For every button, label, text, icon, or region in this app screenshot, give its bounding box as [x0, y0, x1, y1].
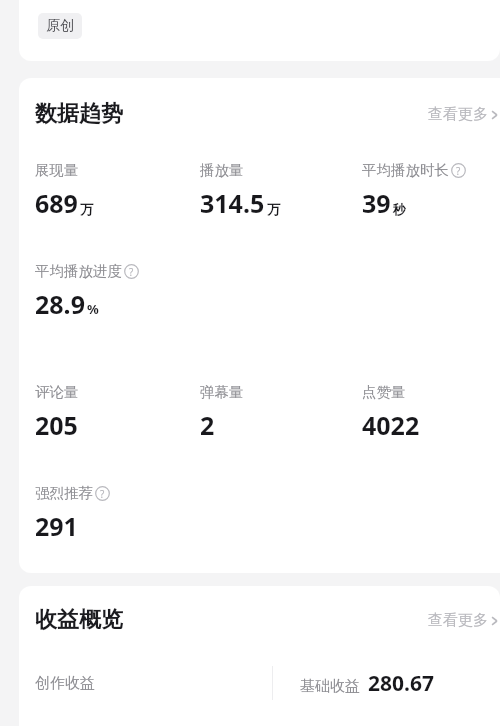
- staticText: 弹幕量: [200, 383, 244, 401]
- staticText: 39: [362, 186, 391, 220]
- staticText: 评论量: [35, 383, 79, 401]
- staticText: 28.9: [35, 287, 85, 321]
- staticText: 基础收益: [300, 677, 360, 696]
- staticText: 点赞量: [362, 383, 406, 401]
- staticText: 万: [80, 201, 93, 217]
- staticText: ?: [129, 265, 134, 279]
- staticText: 291: [35, 509, 78, 543]
- button[interactable]: 查看更多: [426, 101, 500, 128]
- staticText: 314.5: [200, 186, 265, 220]
- button[interactable]: 查看更多: [426, 607, 500, 634]
- staticText: ?: [100, 487, 105, 501]
- staticText: 播放量: [200, 161, 244, 179]
- button[interactable]: 原创: [19, 0, 500, 61]
- staticText: 205: [35, 408, 78, 442]
- staticText: 收益概览: [35, 606, 123, 634]
- staticText: ?: [456, 164, 461, 178]
- staticText: %: [87, 300, 99, 318]
- staticText: 平均播放进度: [35, 262, 122, 280]
- staticText: 查看更多: [428, 611, 488, 630]
- staticText: 2: [200, 408, 215, 442]
- staticText: 创作收益: [35, 674, 95, 693]
- staticText: 强烈推荐: [35, 484, 93, 502]
- staticText: 万: [267, 201, 280, 217]
- staticText: 4022: [362, 408, 420, 442]
- staticText: 280.67: [368, 669, 434, 698]
- staticText: 数据趋势: [35, 100, 123, 128]
- staticText: 展现量: [35, 161, 79, 179]
- staticText: 查看更多: [428, 105, 488, 124]
- staticText: 平均播放时长: [362, 161, 449, 179]
- staticText: 689: [35, 186, 78, 220]
- staticText: 秒: [393, 201, 406, 217]
- staticText: 原创: [46, 17, 74, 35]
